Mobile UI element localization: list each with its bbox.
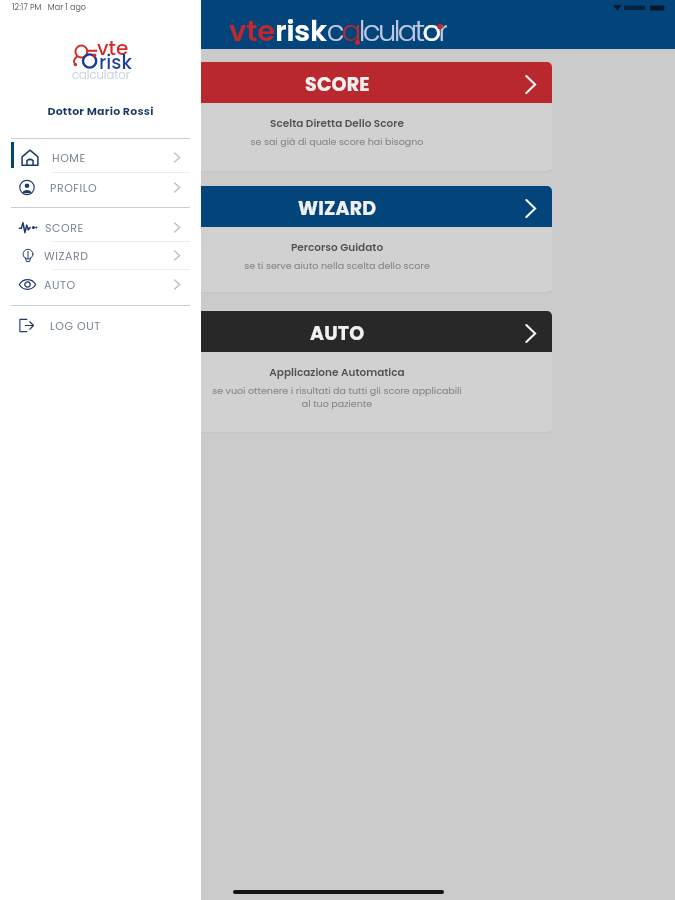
staticText: SCORE xyxy=(305,71,370,98)
button[interactable]: SCORE xyxy=(122,62,552,171)
staticText: PROFILO xyxy=(50,180,98,195)
staticText: 12:17 PM Mar 1 ago xyxy=(12,2,86,13)
staticText: WIZARD xyxy=(44,248,89,263)
staticText: WIZARD xyxy=(298,195,377,222)
staticText: se sai già di quale score hai bisogno xyxy=(122,135,552,148)
button[interactable]: AUTO xyxy=(122,311,552,432)
staticText: risk xyxy=(99,49,132,76)
staticText: calculator xyxy=(72,67,130,83)
button[interactable]: LOG OUT xyxy=(0,311,201,339)
staticText: AUTO xyxy=(310,320,365,347)
button[interactable]: AUTO xyxy=(0,270,201,298)
button[interactable]: HOME xyxy=(0,143,201,171)
staticText: al tuo paziente xyxy=(122,397,552,410)
button[interactable]: PROFILO xyxy=(0,173,201,201)
button[interactable]: SCORE xyxy=(0,213,201,241)
staticText: vteriskcalculator xyxy=(229,11,447,43)
staticText: Scelta Diretta Dello Score xyxy=(122,116,552,131)
other: Wi-Fi and battery status xyxy=(613,5,665,11)
staticText: se ti serve aiuto nella scelta dello sco… xyxy=(122,259,552,272)
staticText: vte xyxy=(97,34,129,62)
staticText: AUTO xyxy=(44,277,76,292)
staticText: Applicazione Automatica xyxy=(122,365,552,380)
staticText: Dottor Mario Rossi xyxy=(0,103,201,118)
staticText: Percorso Guidato xyxy=(122,240,552,255)
staticText: LOG OUT xyxy=(50,318,101,333)
button[interactable]: WIZARD xyxy=(122,186,552,292)
staticText: se vuoi ottenere i risultati da tutti gl… xyxy=(122,384,552,397)
staticText: HOME xyxy=(52,150,86,165)
staticText: SCORE xyxy=(45,220,84,235)
button[interactable]: WIZARD xyxy=(0,241,201,269)
